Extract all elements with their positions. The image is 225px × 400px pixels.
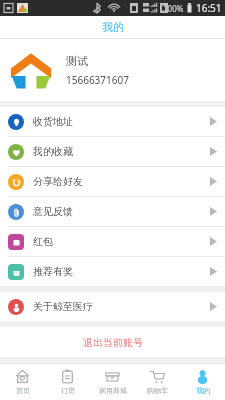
staticText: 100% — [163, 3, 184, 14]
button[interactable]: 首页 — [0, 364, 45, 400]
button[interactable]: 关于鲸至医疗 — [0, 292, 225, 321]
button[interactable]: 测试 — [0, 39, 225, 101]
staticText: 首页 — [16, 386, 30, 395]
staticText: 测试 — [66, 54, 88, 68]
staticText: 推荐有奖 — [33, 265, 73, 278]
button[interactable]: 我的 — [180, 364, 225, 400]
staticText: 红包 — [33, 235, 53, 248]
staticText: 收货地址 — [33, 115, 73, 128]
staticText: 我的 — [196, 386, 210, 395]
button[interactable]: 订货 — [45, 364, 90, 400]
button[interactable]: 购物车 — [135, 364, 180, 400]
staticText: 15666371607 — [66, 73, 129, 87]
staticText: 16:51 — [196, 1, 222, 15]
button[interactable]: 红包 — [0, 227, 225, 257]
staticText: 家用商城 — [99, 386, 127, 395]
staticText: 意见反馈 — [33, 205, 73, 218]
button[interactable]: 意见反馈 — [0, 197, 225, 227]
staticText: 我的 — [102, 20, 124, 34]
staticText: 分享给好友 — [33, 175, 83, 188]
button[interactable]: 推荐有奖 — [0, 257, 225, 286]
staticText: 购物车 — [147, 386, 168, 395]
button[interactable]: 分享给好友 — [0, 167, 225, 197]
staticText: 订货 — [61, 386, 75, 395]
button[interactable]: 收货地址 — [0, 107, 225, 137]
button[interactable]: 我的收藏 — [0, 137, 225, 167]
staticText: 关于鲸至医疗 — [33, 300, 93, 313]
button[interactable]: 家用商城 — [90, 364, 135, 400]
staticText: 我的收藏 — [33, 145, 73, 158]
button[interactable]: 退出当前账号 — [0, 327, 225, 357]
staticText: 退出当前账号 — [83, 336, 143, 349]
